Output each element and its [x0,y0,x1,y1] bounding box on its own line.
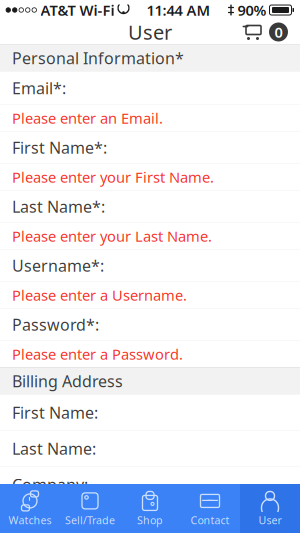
staticText: Shop [137,513,163,527]
staticText: AT&T Wi-Fi [40,0,114,20]
staticText: First Name*: [12,137,107,158]
button[interactable]: Contact [180,484,240,533]
staticText: Contact [190,513,229,527]
button[interactable]: Email*: [0,71,300,104]
staticText: Please enter a Password. [12,344,183,364]
button[interactable]: Sell/Trade [60,484,120,533]
staticText: Watches [8,513,51,527]
button[interactable]: User [240,484,300,533]
staticText: First Name: [12,402,98,423]
button[interactable]: Company: [0,466,300,502]
staticText: Please enter an Email. [12,108,163,128]
staticText: User [258,513,281,527]
button[interactable]: Shop [120,484,180,533]
button[interactable]: First Name: [0,394,300,430]
button[interactable]: Watches [0,484,60,533]
staticText: Last Name*: [12,196,105,217]
staticText: 90% [237,0,266,20]
button[interactable]: Cart, 0 items [235,18,294,46]
staticText: Password*: [12,314,99,335]
staticText: Email*: [12,77,66,99]
staticText: Username*: [12,255,104,276]
button[interactable]: Last Name: [0,430,300,466]
staticText: Company: [12,474,88,495]
staticText: Personal Information* [12,47,184,69]
staticText: Billing Address [12,370,123,392]
staticText: Last Name: [12,438,96,459]
staticText: Please enter your Last Name. [12,226,212,246]
button[interactable]: Username*: [0,249,300,281]
staticText: Please enter a Username. [12,285,187,305]
staticText: 0 [274,22,282,42]
staticText: User [128,19,172,45]
button[interactable]: First Name*: [0,131,300,163]
staticText: Please enter your First Name. [12,167,214,187]
button[interactable]: Last Name*: [0,190,300,222]
staticText: 11:44 AM [146,0,210,20]
staticText: Sell/Trade [65,513,115,527]
button[interactable]: Password*: [0,308,300,340]
